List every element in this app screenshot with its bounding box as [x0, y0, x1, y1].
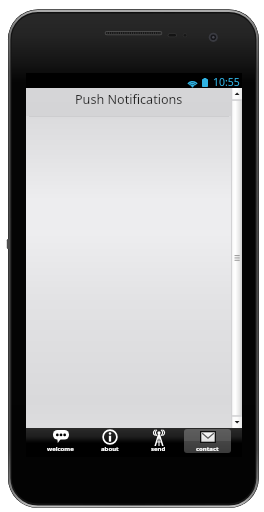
staticText: 10:55	[213, 75, 240, 89]
button[interactable]: welcome	[37, 429, 84, 453]
button[interactable]: contact	[184, 429, 231, 453]
button[interactable]: send	[135, 429, 182, 453]
staticText: send	[151, 445, 166, 453]
button[interactable]: about	[86, 429, 133, 453]
staticText: welcome	[47, 445, 74, 453]
staticText: contact	[196, 445, 219, 453]
staticText: Push Notifications	[75, 91, 183, 108]
staticText: about	[101, 445, 119, 453]
